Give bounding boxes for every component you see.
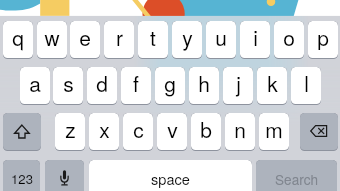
button[interactable]: m: [259, 113, 289, 150]
button[interactable]: Shift: [3, 113, 41, 150]
button[interactable]: space: [89, 160, 252, 191]
staticText: v: [167, 114, 178, 144]
staticText: d: [96, 68, 108, 98]
staticText: t: [150, 22, 156, 52]
staticText: h: [198, 68, 210, 98]
button[interactable]: r: [104, 21, 134, 58]
staticText: z: [65, 114, 76, 144]
staticText: b: [200, 114, 212, 144]
button[interactable]: x: [89, 113, 119, 150]
button[interactable]: p: [308, 21, 338, 58]
button[interactable]: Search: [256, 160, 337, 191]
button[interactable]: q: [3, 21, 33, 58]
button[interactable]: e: [70, 21, 100, 58]
button[interactable]: h: [189, 67, 219, 104]
staticText: y: [182, 22, 193, 52]
staticText: f: [133, 68, 139, 98]
staticText: r: [116, 22, 123, 52]
button[interactable]: Dictate: [45, 160, 84, 191]
button[interactable]: u: [206, 21, 236, 58]
staticText: u: [215, 22, 227, 52]
staticText: l: [304, 68, 309, 98]
button[interactable]: l: [291, 67, 321, 104]
staticText: m: [265, 114, 283, 144]
button[interactable]: 123: [3, 160, 40, 191]
staticText: o: [283, 22, 295, 52]
button[interactable]: k: [257, 67, 287, 104]
button[interactable]: f: [121, 67, 151, 104]
button[interactable]: Backspace: [300, 113, 338, 150]
button[interactable]: z: [55, 113, 85, 150]
button[interactable]: j: [223, 67, 253, 104]
button[interactable]: b: [191, 113, 221, 150]
button[interactable]: y: [172, 21, 202, 58]
staticText: n: [234, 114, 246, 144]
button[interactable]: s: [53, 67, 83, 104]
staticText: 123: [11, 169, 33, 188]
button[interactable]: d: [87, 67, 117, 104]
button[interactable]: g: [155, 67, 185, 104]
staticText: q: [12, 22, 24, 52]
button[interactable]: o: [274, 21, 304, 58]
button[interactable]: i: [240, 21, 270, 58]
button[interactable]: w: [37, 21, 67, 58]
button[interactable]: n: [225, 113, 255, 150]
staticText: e: [79, 22, 91, 52]
button[interactable]: a: [20, 67, 50, 104]
staticText: i: [253, 22, 258, 52]
staticText: Search: [275, 169, 318, 188]
staticText: w: [44, 22, 60, 52]
staticText: x: [99, 114, 110, 144]
button[interactable]: c: [123, 113, 153, 150]
staticText: s: [63, 68, 74, 98]
staticText: space: [151, 168, 190, 189]
staticText: g: [164, 68, 176, 98]
staticText: p: [317, 22, 329, 52]
staticText: a: [29, 68, 41, 98]
button[interactable]: t: [138, 21, 168, 58]
button[interactable]: v: [157, 113, 187, 150]
staticText: k: [267, 68, 278, 98]
staticText: c: [133, 114, 144, 144]
staticText: j: [236, 68, 241, 98]
